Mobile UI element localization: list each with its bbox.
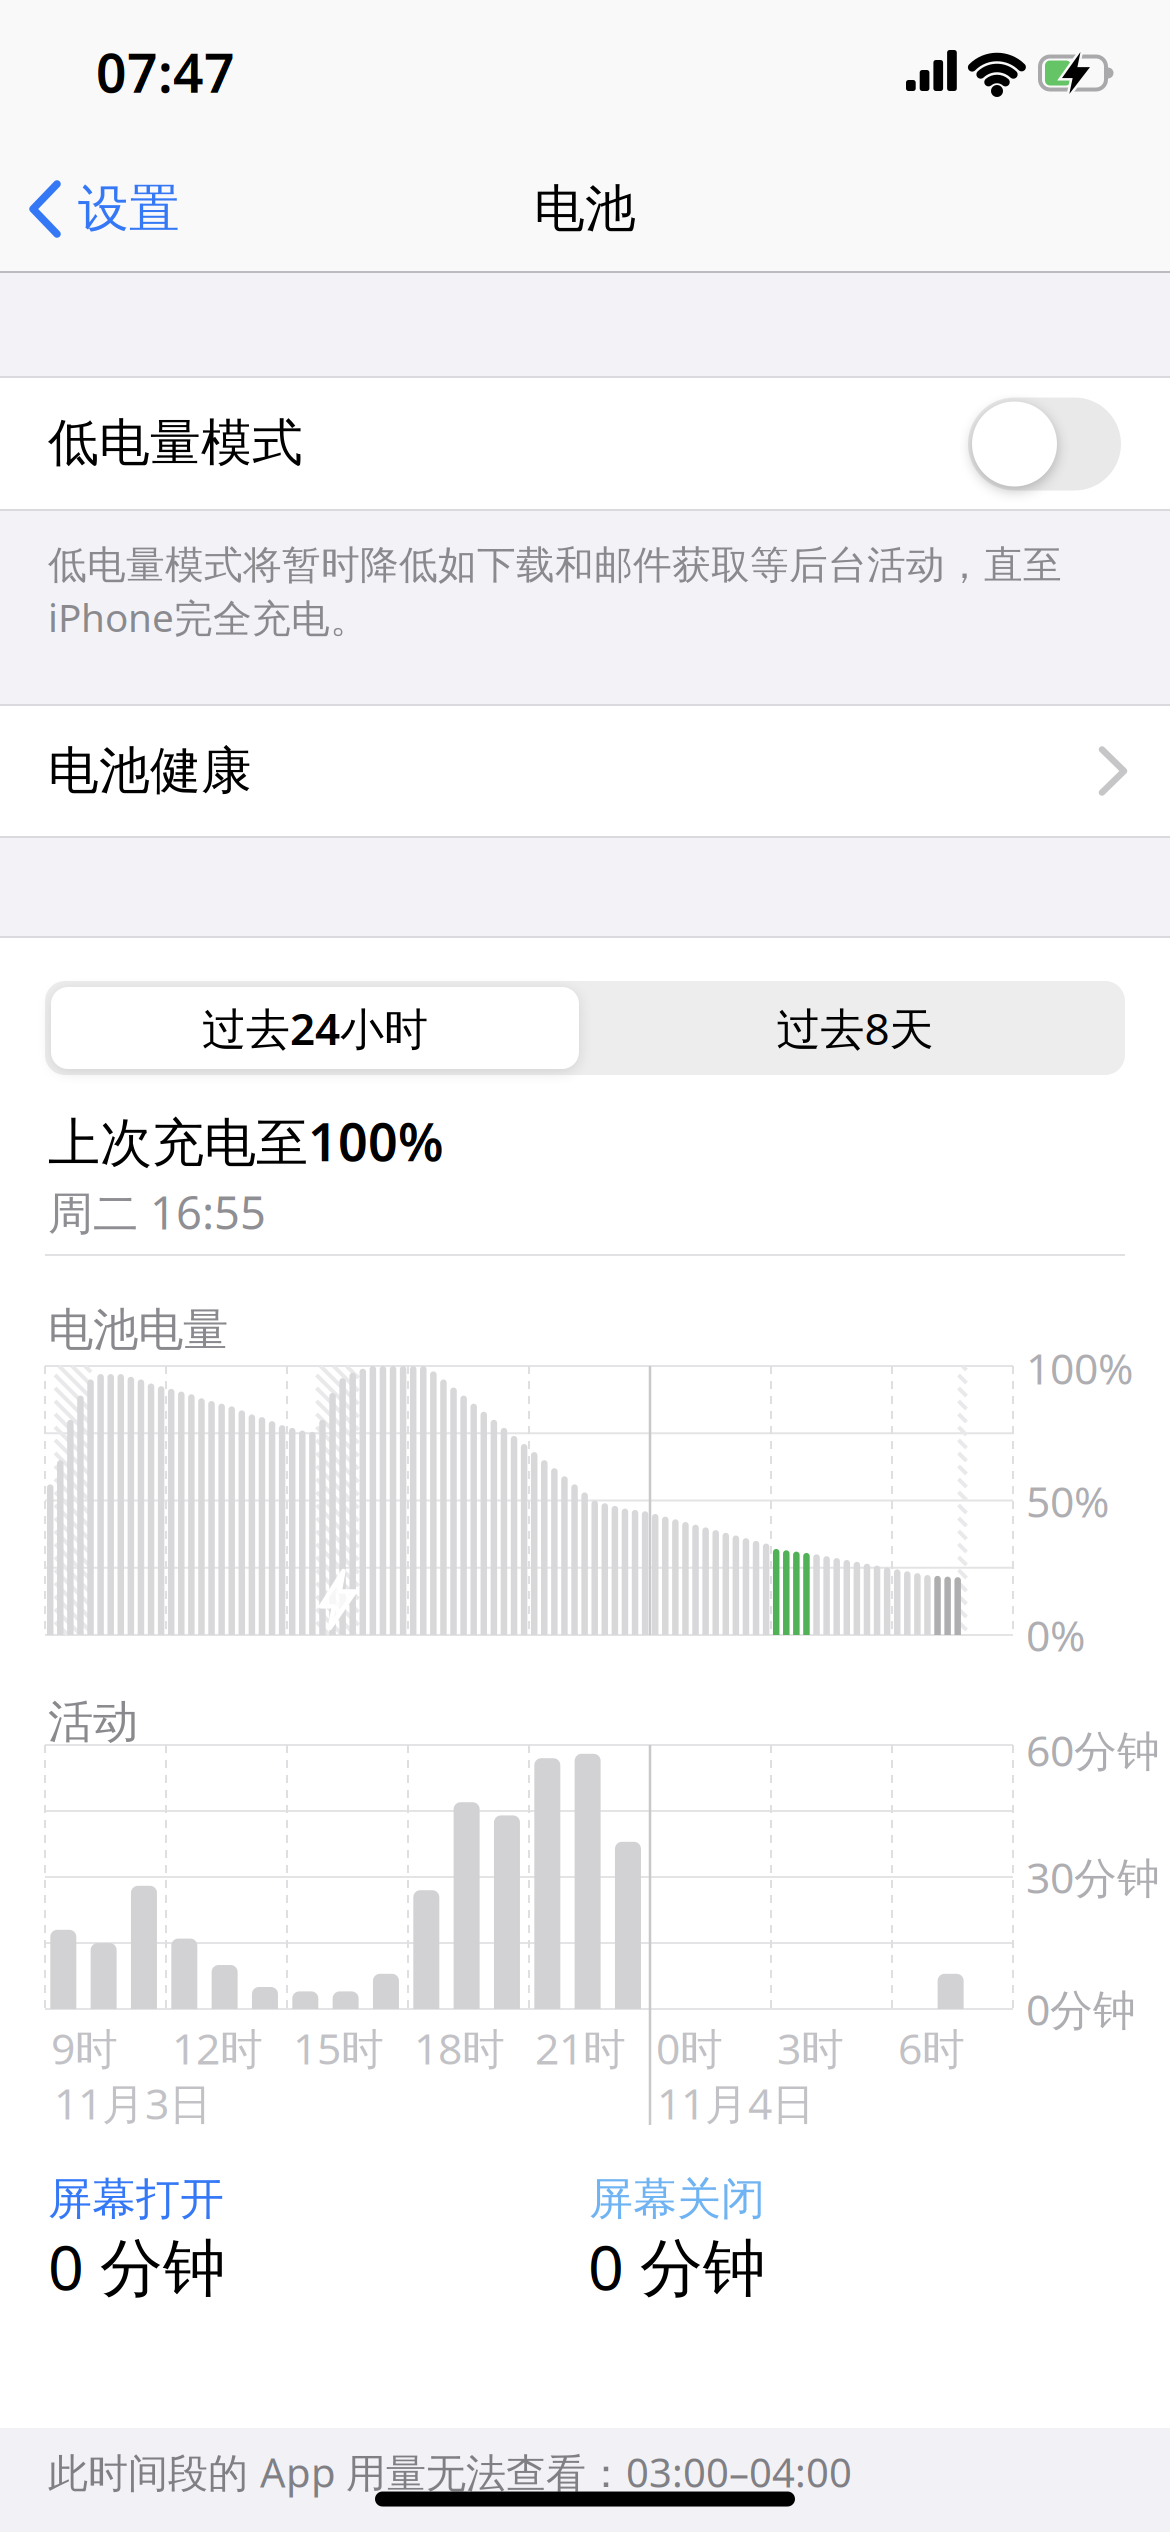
staticText: 18时 bbox=[414, 2020, 505, 2076]
staticText: 9时 bbox=[51, 2020, 118, 2076]
staticText: 6时 bbox=[898, 2020, 965, 2076]
staticText: 21时 bbox=[535, 2020, 626, 2076]
button[interactable]: 屏幕打开 bbox=[48, 2172, 224, 2226]
button[interactable]: 电池健康 bbox=[0, 706, 1170, 836]
staticText: 30分钟 bbox=[1026, 1849, 1160, 1905]
staticText: 屏幕关闭 bbox=[589, 2172, 765, 2226]
staticText: 过去8天 bbox=[776, 999, 933, 1057]
staticText: 15时 bbox=[293, 2020, 384, 2076]
staticText: 低电量模式将暂时降低如下载和邮件获取等后台活动，直至 bbox=[48, 541, 1062, 589]
staticText: 低电量模式 bbox=[48, 412, 303, 474]
staticText: 设置 bbox=[78, 178, 180, 240]
staticText: 3时 bbox=[777, 2020, 844, 2076]
staticText: iPhone完全充电。 bbox=[48, 591, 369, 643]
button[interactable]: 屏幕关闭 bbox=[589, 2172, 765, 2226]
button[interactable]: 低电量模式 bbox=[968, 397, 1121, 490]
staticText: 11月4日 bbox=[657, 2075, 815, 2131]
staticText: 07:47 bbox=[96, 37, 235, 107]
staticText: 此时间段的 App 用量无法查看：03:00–04:00 bbox=[48, 2445, 852, 2498]
staticText: 电池 bbox=[534, 178, 636, 240]
staticText: 周二 16:55 bbox=[48, 1182, 266, 1242]
button[interactable]: 设置 bbox=[30, 174, 180, 244]
staticText: 屏幕打开 bbox=[48, 2172, 224, 2226]
staticText: 11月3日 bbox=[54, 2075, 212, 2131]
staticText: 0 分钟 bbox=[588, 2224, 766, 2308]
staticText: 100% bbox=[1026, 1340, 1133, 1396]
staticText: 50% bbox=[1026, 1473, 1109, 1529]
staticText: 上次充电至100% bbox=[48, 1106, 444, 1176]
staticText: 电池健康 bbox=[48, 740, 252, 802]
button[interactable]: 过去24小时 bbox=[45, 981, 585, 1075]
staticText: 12时 bbox=[172, 2020, 263, 2076]
staticText: 电池电量 bbox=[48, 1302, 228, 1358]
staticText: 0% bbox=[1026, 1607, 1085, 1663]
staticText: 0分钟 bbox=[1026, 1981, 1136, 2037]
staticText: 活动 bbox=[48, 1694, 138, 1750]
staticText: 60分钟 bbox=[1026, 1722, 1160, 1778]
button[interactable]: 过去8天 bbox=[585, 981, 1125, 1075]
staticText: 过去24小时 bbox=[202, 999, 428, 1057]
staticText: 0时 bbox=[656, 2020, 723, 2076]
staticText: 0 分钟 bbox=[48, 2224, 226, 2308]
